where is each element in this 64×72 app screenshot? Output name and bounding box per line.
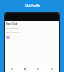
button[interactable]: Home <box>5 65 18 72</box>
button[interactable]: Events <box>31 65 45 72</box>
button[interactable]: Clubs <box>18 65 31 72</box>
staticText: Mon · 6:30 AM <box>6 31 20 34</box>
button[interactable]: Profile <box>45 65 59 72</box>
button[interactable]: Join club <box>6 36 10 39</box>
staticText: Run Club <box>6 22 18 26</box>
staticText: 512 members <box>6 27 19 30</box>
staticText: Club Profile <box>25 4 40 8</box>
